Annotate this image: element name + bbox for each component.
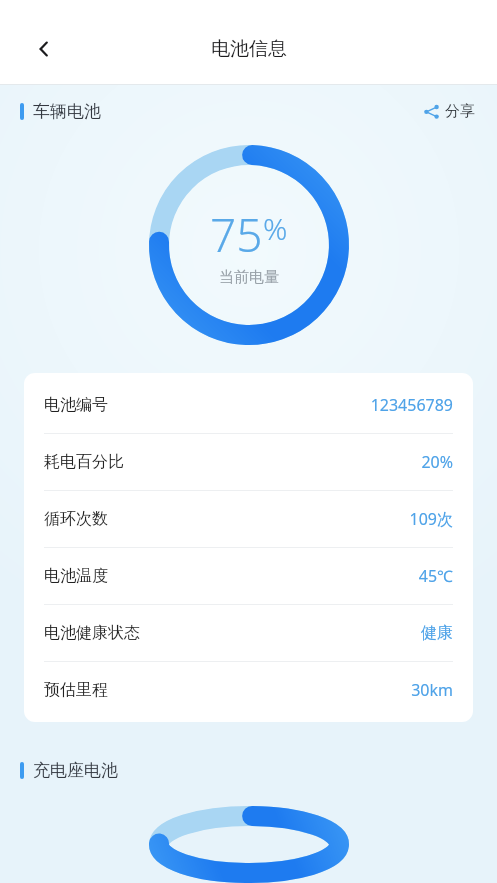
- staticText: 充电座电池: [33, 760, 118, 781]
- staticText: 耗电百分比: [44, 452, 124, 472]
- button[interactable]: 电池编号: [24, 377, 473, 433]
- staticText: 45℃: [418, 565, 453, 587]
- staticText: 30km: [411, 679, 453, 701]
- button[interactable]: 分享: [419, 96, 479, 127]
- staticText: 当前电量: [219, 268, 279, 287]
- staticText: 分享: [445, 102, 475, 121]
- staticText: 预估里程: [44, 680, 108, 700]
- staticText: 123456789: [370, 394, 453, 416]
- staticText: 电池编号: [44, 395, 108, 415]
- button[interactable]: 预估里程: [24, 662, 473, 718]
- button[interactable]: 电池健康状态: [24, 605, 473, 661]
- staticText: 电池温度: [44, 566, 108, 586]
- staticText: 健康: [421, 623, 453, 643]
- staticText: 20%: [421, 451, 453, 473]
- button[interactable]: 耗电百分比: [24, 434, 473, 490]
- button[interactable]: Back: [24, 29, 64, 69]
- staticText: 循环次数: [44, 509, 108, 529]
- staticText: 109次: [409, 508, 453, 530]
- staticText: %: [263, 208, 288, 249]
- button[interactable]: 循环次数: [24, 491, 473, 547]
- staticText: 车辆电池: [33, 101, 101, 122]
- staticText: 电池信息: [211, 37, 287, 61]
- staticText: 电池健康状态: [44, 623, 140, 643]
- staticText: 75: [210, 203, 263, 266]
- button[interactable]: 电池温度: [24, 548, 473, 604]
